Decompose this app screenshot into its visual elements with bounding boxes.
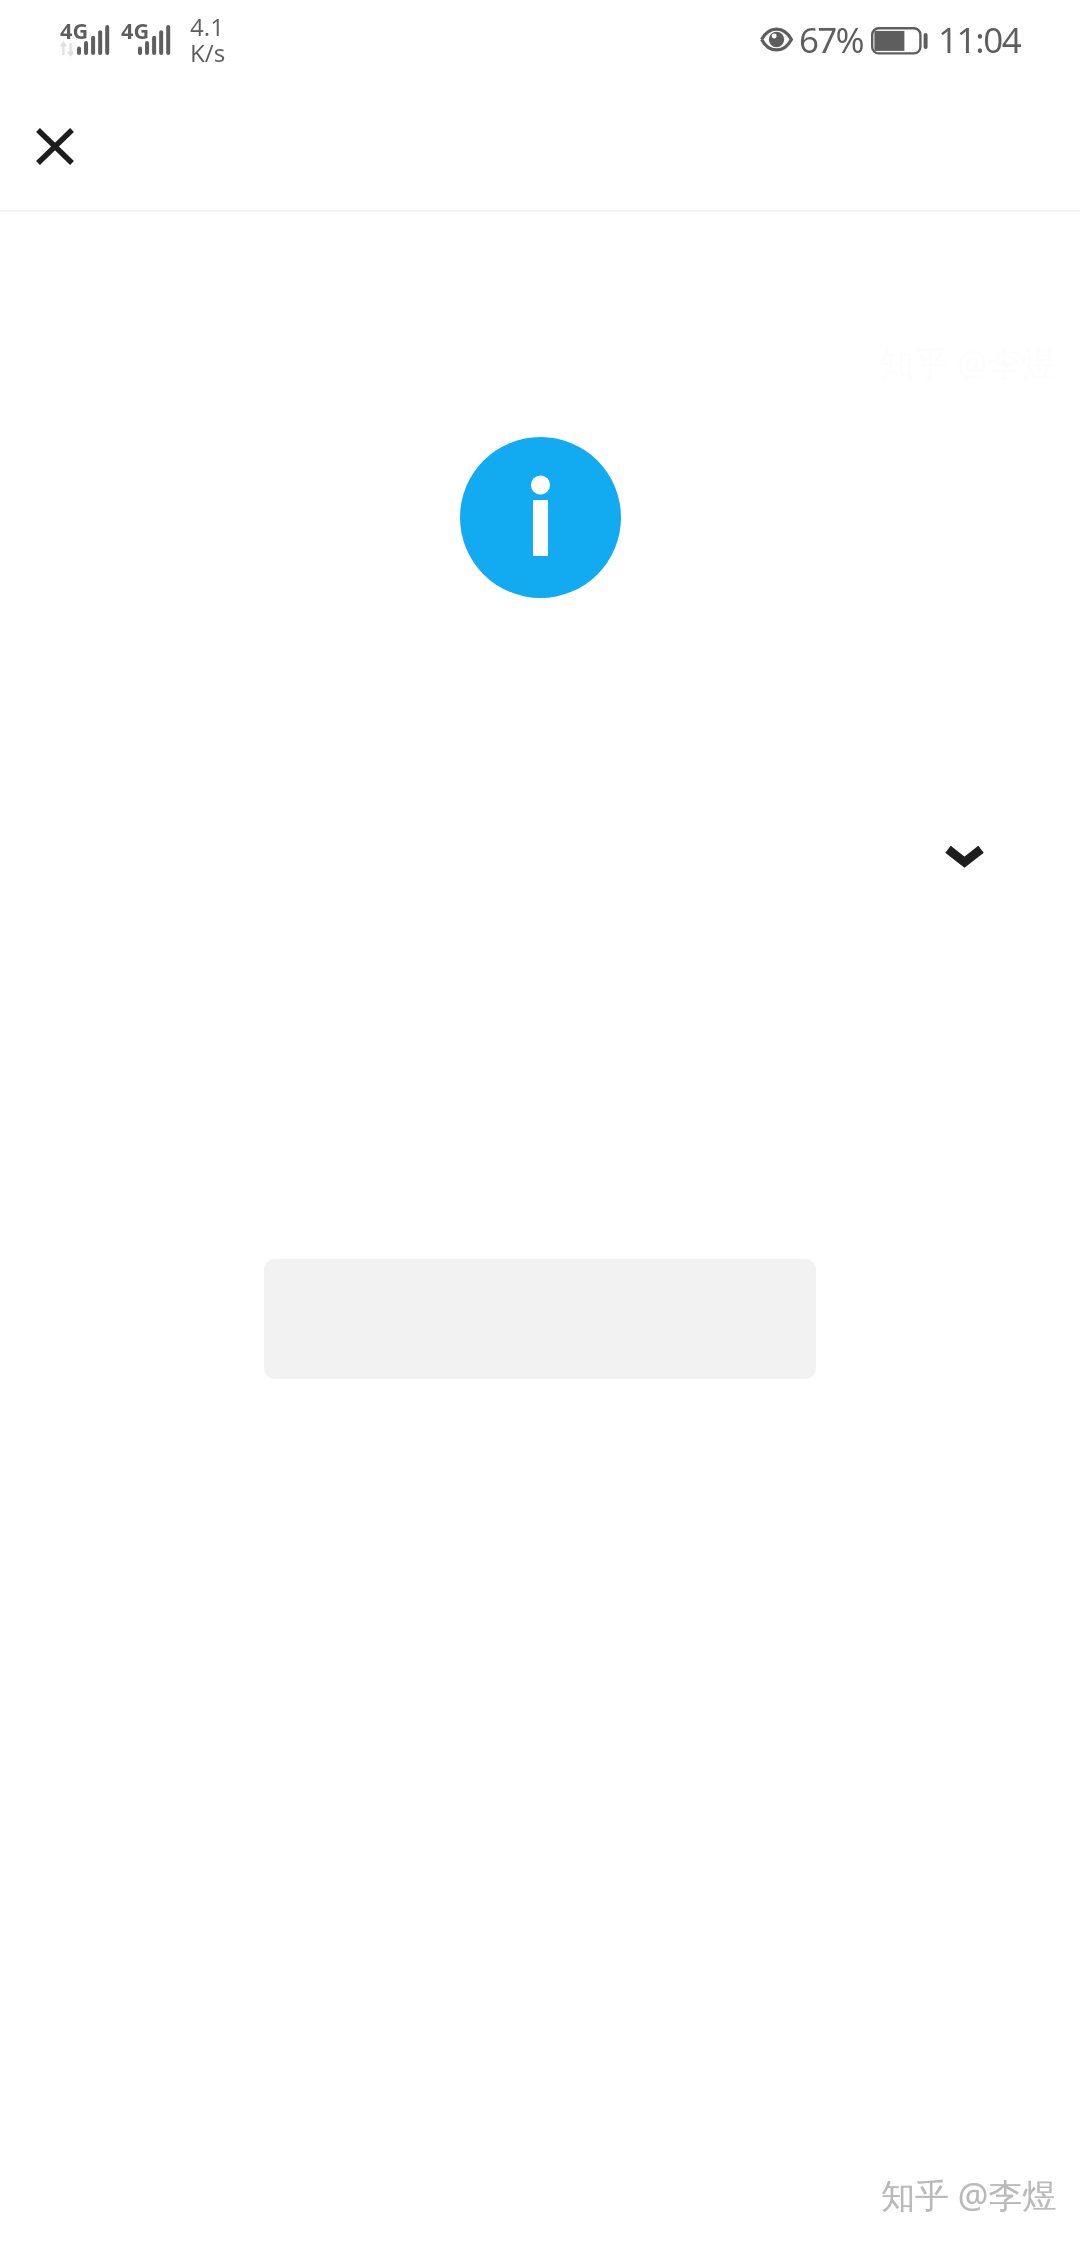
button[interactable]: Close xyxy=(15,106,95,186)
button[interactable]: Information xyxy=(460,437,621,598)
staticText: 11:04 xyxy=(938,16,1021,64)
staticText: 67% xyxy=(799,16,863,64)
button[interactable]: Expand xyxy=(925,817,1005,897)
staticText: 4G xyxy=(121,16,150,46)
staticText: 知乎 @李煜 xyxy=(881,2172,1057,2218)
staticText: 4.1 xyxy=(190,10,224,43)
staticText: K/s xyxy=(190,36,226,69)
staticText: 4G xyxy=(60,16,89,46)
